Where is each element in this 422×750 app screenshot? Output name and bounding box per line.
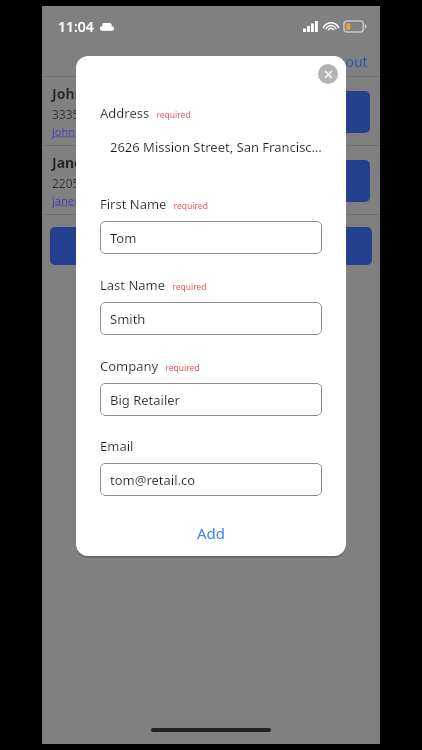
- staticText: Email: [100, 437, 134, 455]
- staticText: Logout: [321, 52, 368, 71]
- staticText: tom@retail.co: [110, 471, 196, 489]
- staticText: First Name required: [100, 194, 208, 213]
- button[interactable]: Smith: [100, 302, 322, 335]
- staticText: Smith: [110, 310, 146, 328]
- staticText: john@mail.com: [52, 124, 133, 139]
- button[interactable]: Big Retailer: [100, 383, 322, 416]
- staticText: Company required: [100, 356, 200, 375]
- staticText: 11:04: [58, 17, 94, 36]
- staticText: 2205558888: [52, 175, 121, 191]
- button[interactable]: John Doe: [42, 77, 380, 146]
- staticText: Add New Contact: [154, 237, 268, 256]
- staticText: Address required: [100, 103, 191, 122]
- staticText: Tom: [110, 229, 137, 247]
- button[interactable]: Assign: [278, 160, 370, 202]
- button[interactable]: Logout: [321, 52, 368, 71]
- staticText: Add: [197, 523, 226, 543]
- staticText: 3335557777: [52, 106, 121, 122]
- button[interactable]: Tom: [100, 221, 322, 254]
- staticText: Last Name required: [100, 275, 207, 294]
- staticText: Big Retailer: [110, 391, 180, 409]
- staticText: John Doe: [52, 84, 115, 103]
- button[interactable]: Close: [318, 64, 338, 84]
- staticText: jane@mail.com: [52, 193, 132, 208]
- button[interactable]: tom@retail.co: [100, 463, 322, 496]
- button[interactable]: Assign: [278, 91, 370, 133]
- staticText: Jane Doe: [52, 153, 114, 172]
- button[interactable]: Add: [100, 520, 322, 546]
- button[interactable]: Add New Contact: [50, 227, 372, 265]
- staticText: 2626 Mission Street, San Francisc…: [110, 138, 322, 156]
- button[interactable]: Jane Doe: [42, 146, 380, 215]
